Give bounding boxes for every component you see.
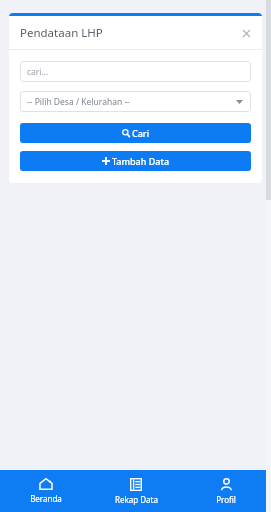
staticText: Pendataan LHP (20, 25, 103, 41)
button[interactable]: Beranda (0, 470, 91, 512)
button[interactable]: Close (235, 22, 257, 44)
button[interactable]: Cari (20, 123, 251, 143)
staticText: Tambah Data (112, 155, 170, 167)
button[interactable]: Rekap Data (91, 470, 181, 512)
button[interactable]: -- Pilih Desa / Kelurahan -- (20, 91, 251, 112)
staticText: -- Pilih Desa / Kelurahan -- (27, 96, 130, 108)
staticText: Rekap Data (115, 494, 158, 505)
staticText: cari... (27, 66, 49, 78)
button[interactable]: Profil (181, 470, 271, 512)
staticText: Profil (216, 494, 236, 505)
staticText: Cari (132, 127, 150, 139)
button[interactable]: Tambah Data (20, 151, 251, 171)
button[interactable]: cari... (20, 61, 251, 82)
staticText: Beranda (30, 493, 62, 504)
